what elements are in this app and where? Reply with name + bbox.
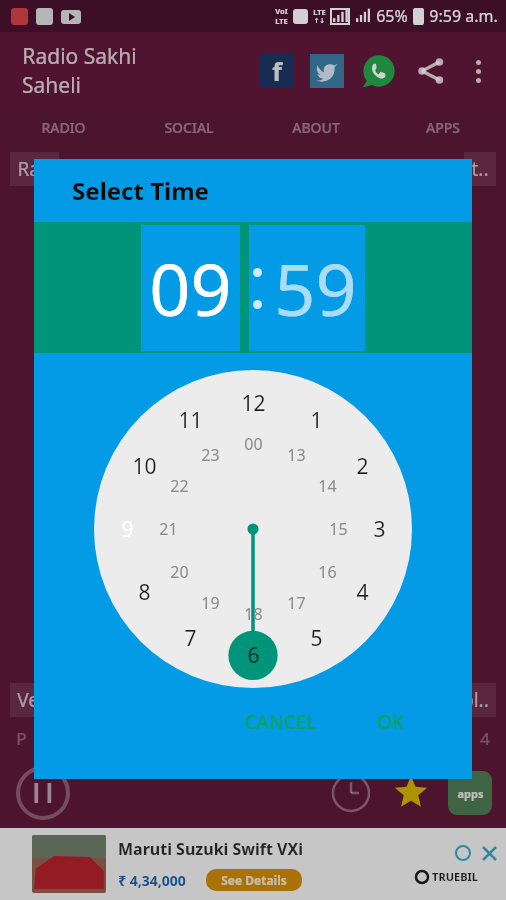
staticText: SOCIAL	[164, 118, 214, 137]
button[interactable]: 23	[190, 435, 230, 475]
staticText: 7	[184, 624, 197, 653]
button[interactable]: ABOUT	[252, 110, 379, 144]
staticText: Select Time	[72, 174, 209, 207]
button[interactable]: Maruti Suzuki Swift VXi	[0, 828, 506, 900]
staticText: CANCEL	[244, 709, 317, 735]
button[interactable]: Facebook	[260, 54, 294, 88]
button[interactable]: Ve	[17, 683, 39, 717]
staticText: LTE	[313, 7, 326, 17]
button[interactable]: 4	[342, 572, 382, 612]
staticText: APPS	[426, 118, 460, 137]
button[interactable]: 19	[190, 583, 230, 623]
button[interactable]: 11	[170, 400, 210, 440]
button[interactable]: 21	[148, 509, 188, 549]
staticText: 6	[247, 641, 260, 670]
button[interactable]: 16	[307, 552, 347, 592]
staticText: 9:59 a.m.	[429, 5, 498, 27]
staticText: 10	[132, 452, 157, 481]
button[interactable]: 3	[359, 509, 399, 549]
staticText: 14	[318, 475, 337, 497]
button[interactable]: t..	[471, 152, 489, 186]
staticText: 59	[274, 239, 357, 337]
staticText: 16	[318, 561, 337, 583]
staticText: ol..	[462, 687, 489, 713]
staticText: RADIO	[41, 118, 86, 137]
staticText: 2	[356, 452, 369, 481]
button[interactable]: 20	[159, 552, 199, 592]
staticText: 8	[138, 578, 151, 607]
button[interactable]: Rad	[17, 152, 52, 186]
staticText: 00	[244, 433, 263, 455]
staticText: 19	[201, 592, 220, 614]
staticText: Rad	[17, 156, 52, 182]
button[interactable]: 17	[276, 583, 316, 623]
button[interactable]: OK	[377, 709, 404, 735]
button[interactable]: Minute 59	[266, 225, 365, 351]
staticText: Ve	[17, 687, 39, 713]
staticText: f	[272, 54, 282, 88]
button[interactable]: 15	[318, 509, 358, 549]
button[interactable]: ol..	[462, 683, 489, 717]
button[interactable]: Twitter	[310, 54, 344, 88]
button[interactable]: More options	[464, 57, 492, 85]
staticText: ↑↓	[314, 17, 325, 25]
button[interactable]: SOCIAL	[126, 110, 252, 144]
staticText: ₹ 4,34,000	[118, 871, 186, 890]
button[interactable]: Favorite	[388, 770, 434, 816]
staticText: 65%	[376, 5, 408, 27]
button[interactable]: 13	[276, 435, 316, 475]
button[interactable]: 10	[124, 446, 164, 486]
staticText: TRUEBIL	[432, 869, 478, 884]
staticText: 18	[244, 603, 263, 625]
button[interactable]: 12	[233, 383, 273, 423]
button[interactable]: 5	[296, 618, 336, 658]
button[interactable]: 00	[233, 424, 273, 464]
button[interactable]: Sleep timer	[328, 770, 374, 816]
button[interactable]: See Details	[221, 872, 287, 888]
button[interactable]: 9	[107, 509, 147, 549]
button[interactable]: 18	[233, 594, 273, 634]
staticText: 3	[373, 515, 386, 544]
button[interactable]: 2	[342, 446, 382, 486]
staticText: t..	[471, 156, 489, 182]
button[interactable]: 1	[296, 400, 336, 440]
button[interactable]: Ad info	[454, 844, 472, 862]
button[interactable]: APPS	[379, 110, 506, 144]
staticText: Radio Sakhi	[22, 42, 137, 71]
staticText: 13	[287, 444, 306, 466]
button[interactable]: 6	[233, 635, 273, 675]
button[interactable]: WhatsApp	[360, 52, 398, 90]
staticText: 20	[170, 561, 189, 583]
staticText: 4	[480, 727, 490, 750]
staticText: 22	[170, 475, 189, 497]
staticText: VoI	[275, 6, 288, 16]
button[interactable]: Share	[414, 54, 448, 88]
button[interactable]: 7	[170, 618, 210, 658]
staticText: 9	[121, 515, 134, 544]
button[interactable]: RADIO	[0, 110, 126, 144]
staticText: 17	[287, 592, 306, 614]
button[interactable]: Apps	[448, 771, 492, 815]
button[interactable]: 8	[124, 572, 164, 612]
staticText: Maruti Suzuki Swift VXi	[118, 838, 303, 860]
staticText: 4	[356, 578, 369, 607]
staticText: 5	[310, 624, 323, 653]
staticText: See Details	[221, 872, 287, 888]
staticText: 12	[241, 389, 266, 418]
button[interactable]: 22	[159, 466, 199, 506]
staticText: Saheli	[22, 71, 81, 100]
staticText: OK	[377, 709, 404, 735]
button[interactable]: Hour 09	[141, 225, 240, 351]
staticText: 15	[329, 518, 348, 540]
staticText: LTE	[275, 16, 288, 26]
staticText: 23	[201, 444, 220, 466]
button[interactable]: CANCEL	[244, 709, 317, 735]
staticText: 09	[149, 239, 232, 337]
staticText: 11	[178, 406, 203, 435]
staticText: apps	[457, 786, 484, 801]
button[interactable]: 14	[307, 466, 347, 506]
staticText: 21	[159, 518, 178, 540]
button[interactable]: Close ad	[480, 844, 498, 862]
button[interactable]: Pause	[14, 764, 72, 822]
staticText: ABOUT	[292, 118, 340, 137]
